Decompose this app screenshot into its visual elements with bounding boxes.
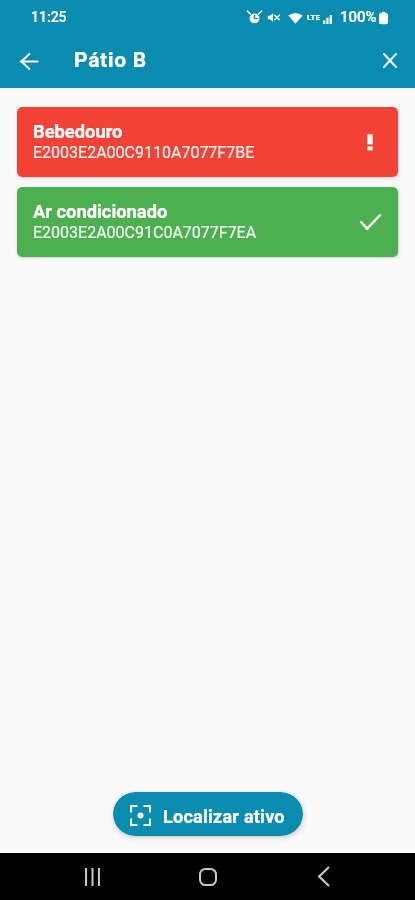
staticText: 11:25 — [31, 9, 67, 25]
staticText: E2003E2A00C91C0A7077F7EA — [33, 223, 257, 242]
staticText: 100% — [340, 8, 377, 26]
staticText: LTE — [307, 13, 320, 22]
staticText: Localizar ativo — [163, 806, 285, 827]
button[interactable]: Home — [184, 853, 232, 900]
button[interactable]: Localizar ativo — [113, 792, 303, 836]
button[interactable]: Back — [299, 853, 347, 900]
button[interactable]: Recents — [68, 853, 116, 900]
button[interactable]: Ar condicionado — [17, 187, 398, 257]
staticText: Ar condicionado — [33, 201, 168, 222]
button[interactable]: Bebedouro — [17, 107, 398, 177]
staticText: Bebedouro — [33, 121, 123, 142]
button[interactable]: Back — [9, 41, 49, 81]
staticText: Pátio B — [74, 48, 147, 73]
button[interactable]: Close — [370, 40, 410, 80]
staticText: E2003E2A00C9110A7077F7BE — [33, 143, 255, 162]
